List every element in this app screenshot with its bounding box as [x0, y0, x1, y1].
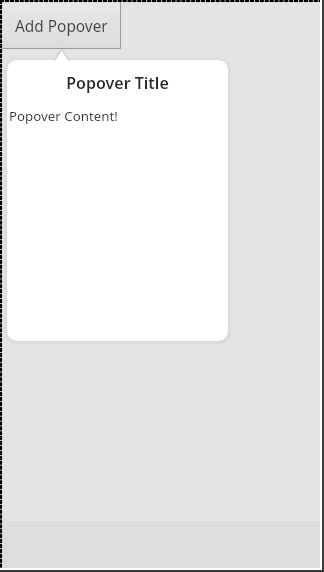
button[interactable]: Add Popover	[1, 1, 121, 49]
staticText: Popover Title	[7, 72, 228, 94]
staticText: Add Popover	[15, 16, 108, 37]
staticText: Popover Content!	[9, 107, 118, 125]
